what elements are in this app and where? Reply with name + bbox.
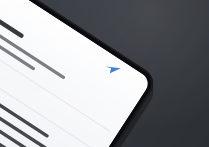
button[interactable]: Phone on desk showing a settings screen	[0, 0, 209, 147]
